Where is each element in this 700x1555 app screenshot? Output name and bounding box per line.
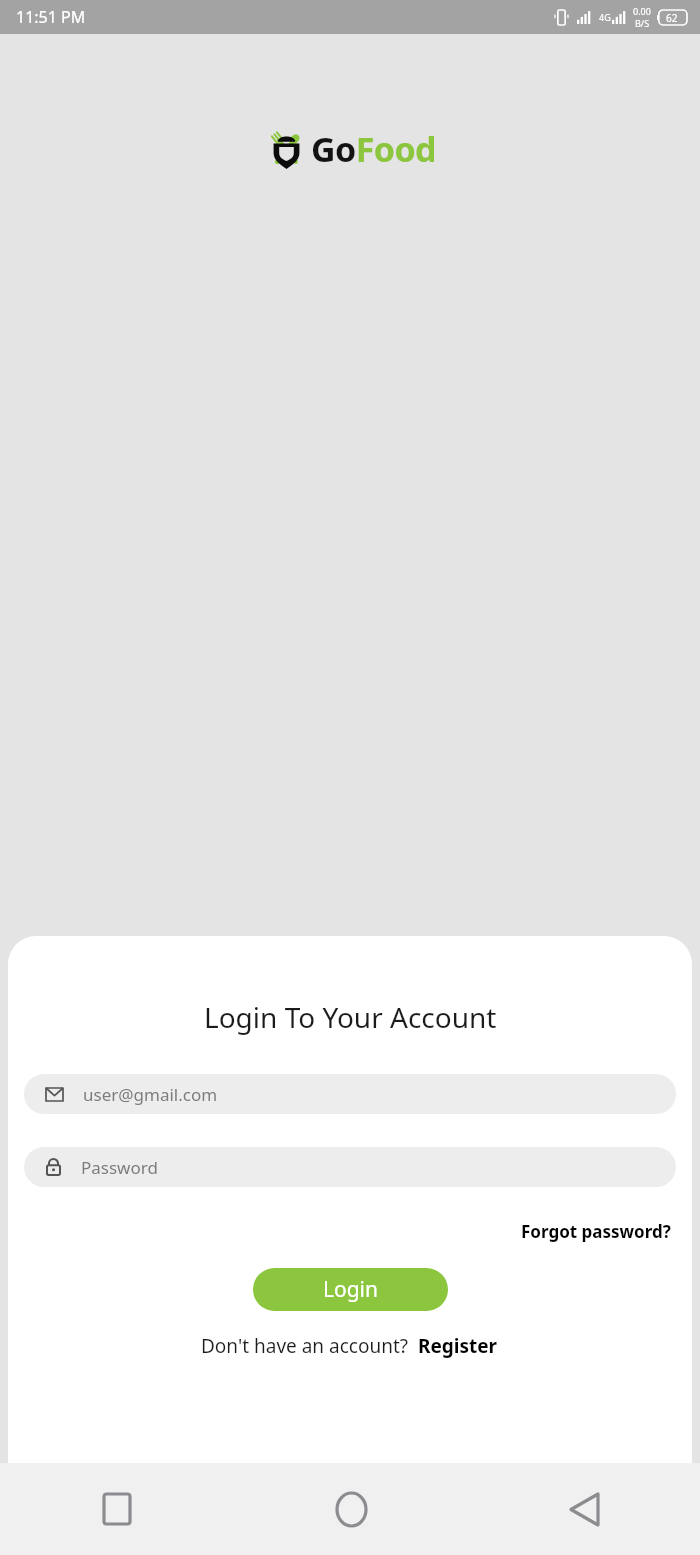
button[interactable]: Recent apps bbox=[90, 1482, 144, 1536]
staticText: 62 bbox=[666, 11, 678, 25]
staticText: GoFood bbox=[311, 126, 436, 172]
button[interactable]: Login bbox=[253, 1268, 448, 1311]
other: Email bbox=[46, 1088, 63, 1101]
other: Password bbox=[46, 1158, 61, 1176]
button[interactable]: Password bbox=[24, 1147, 676, 1187]
button[interactable]: Home bbox=[324, 1482, 378, 1536]
staticText: Password bbox=[81, 1156, 158, 1179]
staticText: user@gmail.com bbox=[83, 1083, 218, 1106]
button[interactable]: Register bbox=[416, 1331, 500, 1361]
button[interactable]: Email bbox=[24, 1074, 676, 1114]
other: GoFood logo bbox=[265, 129, 308, 169]
staticText: Don't have an account? bbox=[201, 1333, 409, 1359]
button[interactable]: Forgot password? bbox=[518, 1217, 674, 1246]
staticText: 4G bbox=[599, 11, 611, 23]
staticText: Login bbox=[323, 1275, 379, 1304]
staticText: Login To Your Account bbox=[204, 998, 497, 1036]
staticText: B/S bbox=[635, 17, 650, 29]
staticText: 0.00 bbox=[633, 5, 651, 17]
button[interactable]: Back bbox=[557, 1482, 611, 1536]
staticText: 11:51 PM bbox=[16, 6, 86, 28]
